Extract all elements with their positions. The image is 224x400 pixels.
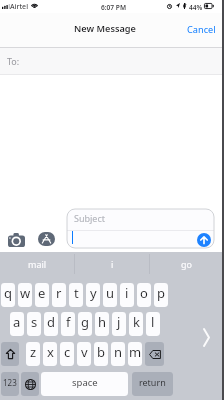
staticText: h (98, 313, 107, 331)
staticText: n (114, 343, 123, 361)
staticText: i (125, 284, 129, 302)
button[interactable]: i (75, 252, 150, 275)
button[interactable]: k (129, 312, 143, 336)
button[interactable]: return (132, 372, 173, 396)
button[interactable]: g (78, 312, 92, 336)
button[interactable]: To: (0, 48, 224, 75)
staticText: d (47, 313, 55, 331)
staticText: go (181, 258, 192, 270)
button[interactable]: mail (0, 252, 75, 275)
staticText: s (31, 313, 38, 331)
button[interactable]: Apps (38, 232, 55, 246)
staticText: c (64, 343, 71, 361)
button[interactable]: Backspace (145, 342, 164, 366)
button[interactable]: go (149, 252, 224, 275)
staticText: space (72, 376, 98, 389)
button[interactable]: y (86, 283, 100, 307)
button[interactable]: z (26, 342, 40, 366)
button[interactable]: Change keyboard (21, 372, 39, 396)
staticText: x (47, 343, 54, 361)
staticText: return (139, 376, 166, 388)
button[interactable]: v (77, 342, 91, 366)
button[interactable]: Send (197, 233, 211, 247)
button[interactable]: s (27, 312, 41, 336)
staticText: Subject (74, 212, 106, 224)
button[interactable]: q (1, 283, 15, 307)
button[interactable]: Camera (8, 233, 25, 247)
button[interactable]: i (120, 283, 134, 307)
staticText: p (157, 284, 165, 302)
staticText: 123 (3, 377, 17, 388)
button[interactable]: 123 (1, 372, 19, 396)
staticText: j (117, 313, 121, 331)
staticText: o (140, 284, 148, 302)
staticText: w (20, 284, 31, 302)
staticText: New Message (0, 22, 217, 35)
button[interactable]: x (43, 342, 57, 366)
button[interactable]: e (35, 283, 49, 307)
button[interactable]: p (154, 283, 168, 307)
staticText: l (151, 313, 155, 331)
staticText: v (81, 343, 88, 361)
staticText: g (81, 313, 89, 331)
staticText: m (129, 343, 142, 361)
button[interactable]: n (111, 342, 125, 366)
button[interactable]: Cancel (185, 18, 218, 41)
button[interactable]: u (103, 283, 117, 307)
staticText: 6:07 PM (101, 3, 127, 12)
button[interactable]: t (69, 283, 83, 307)
button[interactable]: w (18, 283, 32, 307)
staticText: Cancel (187, 23, 216, 36)
staticText: a (13, 313, 21, 331)
staticText: b (97, 343, 105, 361)
staticText: Airtel (10, 2, 29, 12)
button[interactable]: j (112, 312, 126, 336)
button[interactable]: r (52, 283, 66, 307)
staticText: t (74, 284, 79, 302)
button[interactable]: d (44, 312, 58, 336)
button[interactable]: f (61, 312, 75, 336)
staticText: 44% (189, 3, 203, 12)
staticText: r (56, 284, 62, 302)
staticText: e (38, 284, 46, 302)
button[interactable]: Shift (1, 342, 19, 366)
staticText: q (4, 284, 12, 302)
staticText: u (106, 284, 115, 302)
button[interactable]: m (128, 342, 142, 366)
button[interactable]: b (94, 342, 108, 366)
staticText: To: (7, 55, 20, 67)
button[interactable]: space (41, 372, 128, 396)
staticText: f (66, 313, 71, 331)
staticText: i (111, 258, 114, 270)
staticText: z (30, 343, 37, 361)
staticText: y (90, 284, 97, 302)
staticText: k (133, 313, 140, 331)
button[interactable]: a (10, 312, 24, 336)
button[interactable]: l (146, 312, 160, 336)
button[interactable]: h (95, 312, 109, 336)
button[interactable]: c (60, 342, 74, 366)
button[interactable]: o (137, 283, 151, 307)
button[interactable]: Subject (67, 209, 214, 248)
staticText: mail (28, 258, 47, 270)
